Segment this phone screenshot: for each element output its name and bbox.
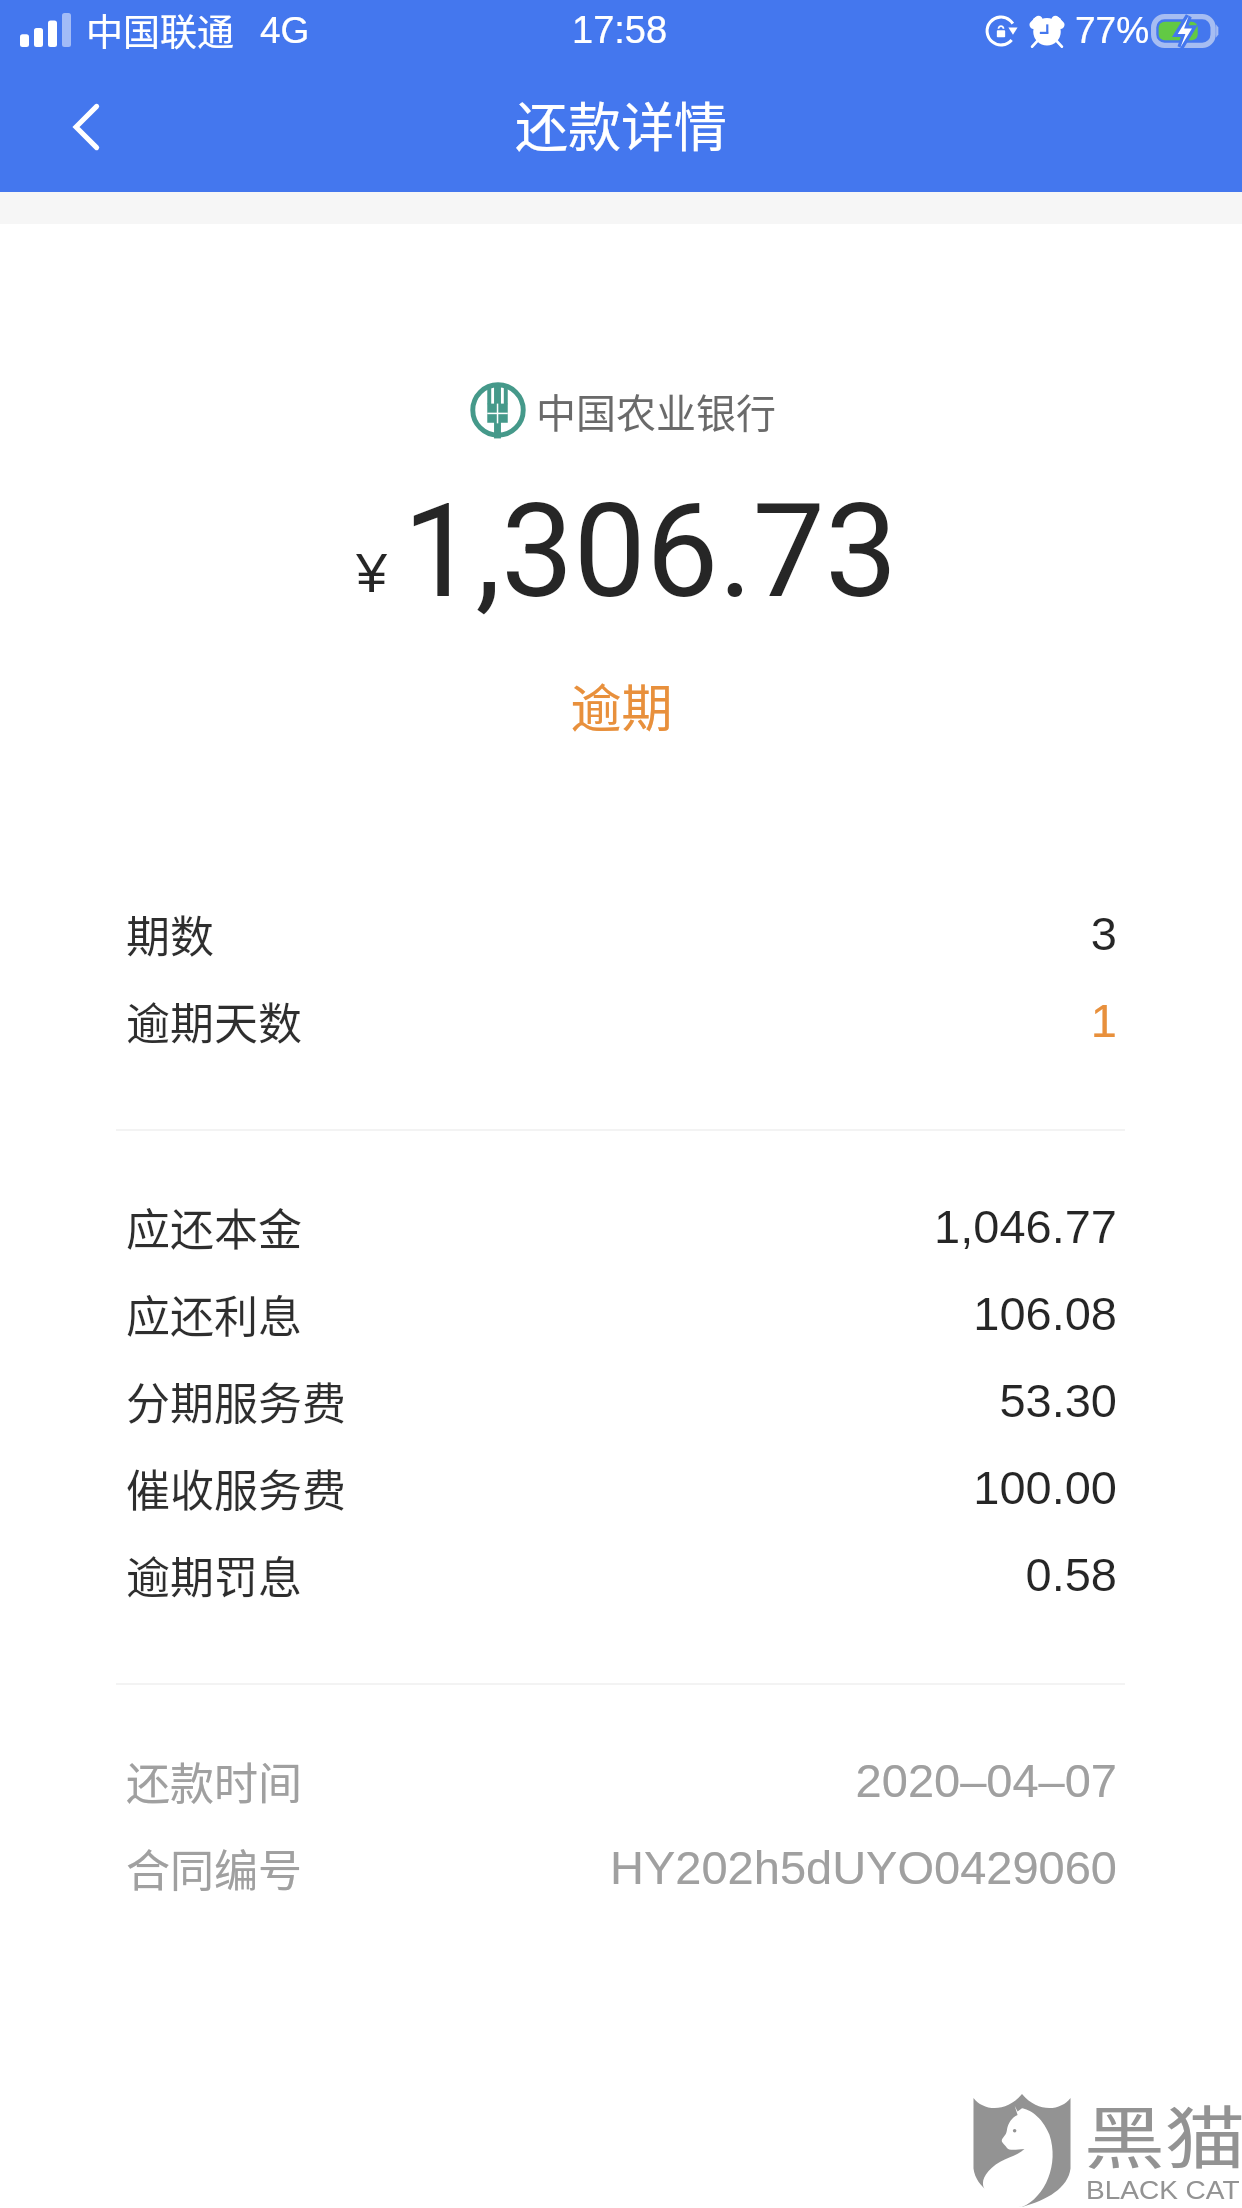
staticText: 应还利息 [126, 1282, 302, 1346]
staticText: 3 [222, 907, 1117, 960]
staticText: 中国联通 [86, 3, 234, 57]
staticText: 逾期天数 [126, 989, 302, 1053]
button[interactable]: Back [0, 60, 120, 192]
staticText: 期数 [126, 902, 214, 966]
staticText: 黑猫 [1084, 2084, 1242, 2183]
staticText: 106.08 [310, 1287, 1117, 1340]
staticText: BLACK CAT [1086, 2176, 1241, 2204]
staticText: 催收服务费 [126, 1456, 346, 1520]
staticText: 17:58 [572, 9, 668, 51]
staticText: 逾期罚息 [126, 1543, 302, 1607]
staticText: 中国农业银行 [536, 382, 776, 440]
staticText: 0.58 [310, 1548, 1117, 1601]
staticText: 还款时间 [126, 1749, 302, 1813]
staticText: 1 [310, 994, 1117, 1047]
staticText: 53.30 [354, 1374, 1117, 1427]
staticText: ¥ [356, 541, 388, 604]
staticText: 100.00 [354, 1461, 1117, 1514]
staticText: HY202h5dUYO0429060 [310, 1841, 1117, 1894]
staticText: 4G [260, 10, 310, 51]
staticText: 合同编号 [126, 1836, 302, 1900]
staticText: 还款详情 [515, 86, 727, 163]
staticText: 77% [1075, 10, 1150, 51]
staticText: 逾期 [570, 668, 673, 742]
staticText: 1,306.73 [403, 476, 898, 627]
staticText: 分期服务费 [126, 1369, 346, 1433]
staticText: 2020–04–07 [310, 1754, 1117, 1807]
staticText: 应还本金 [126, 1195, 302, 1259]
staticText: 1,046.77 [310, 1200, 1117, 1253]
